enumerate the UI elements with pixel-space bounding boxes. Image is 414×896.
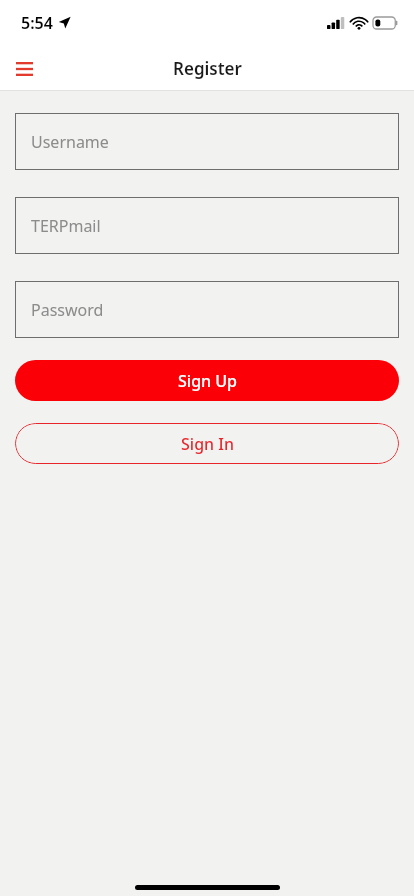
staticText: Username: [31, 131, 109, 153]
button[interactable]: Sign In: [15, 423, 399, 464]
staticText: TERPmail: [31, 215, 101, 237]
button[interactable]: TERPmail: [15, 197, 399, 254]
staticText: Register: [173, 57, 242, 80]
staticText: Sign Up: [178, 370, 237, 392]
button[interactable]: Sign Up: [15, 360, 399, 401]
button[interactable]: Password: [15, 281, 399, 338]
staticText: Sign In: [181, 433, 234, 455]
staticText: Password: [31, 299, 104, 321]
staticText: 5:54: [21, 12, 53, 34]
button[interactable]: Username: [15, 113, 399, 170]
button[interactable]: Open navigation menu: [8, 53, 40, 85]
